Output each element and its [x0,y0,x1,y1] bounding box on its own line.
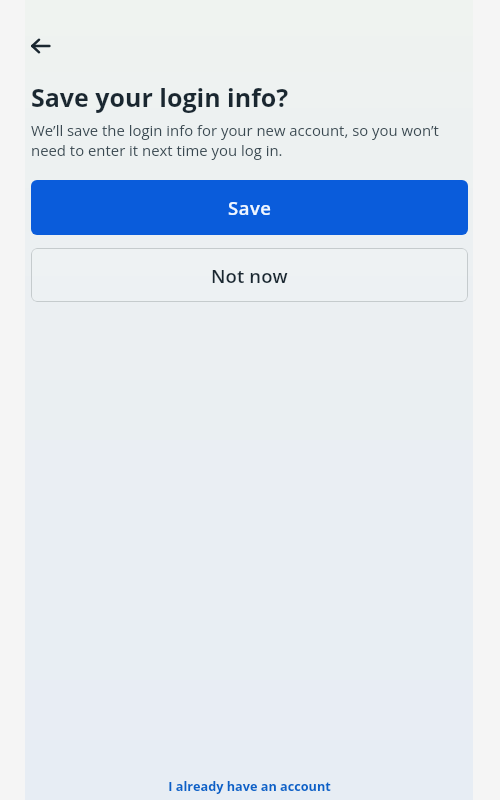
staticText: Not now [211,263,288,288]
button[interactable]: I already have an account [25,769,473,800]
staticText: We’ll save the login info for your new a… [31,120,467,161]
staticText: I already have an account [168,777,331,794]
button[interactable]: Back [25,24,69,68]
staticText: Save [228,195,272,220]
button[interactable]: Not now [31,248,468,302]
staticText: Save your login info? [31,80,289,114]
button[interactable]: Save [31,180,468,235]
